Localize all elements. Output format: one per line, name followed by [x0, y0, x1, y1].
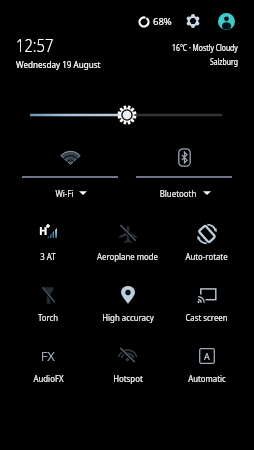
staticText: Bluetooth: [159, 187, 196, 199]
staticText: 3 AT: [40, 250, 56, 262]
staticText: FX: [41, 347, 55, 365]
staticText: AudioFX: [33, 372, 64, 384]
button[interactable]: Wi-Fi: [13, 145, 127, 199]
button[interactable]: A: [167, 340, 246, 401]
staticText: Wi-Fi: [55, 187, 74, 199]
staticText: Salzburg: [210, 55, 238, 67]
staticText: A: [204, 350, 210, 362]
button[interactable]: H: [8, 218, 88, 279]
button[interactable]: Aeroplane mode: [88, 218, 167, 279]
button[interactable]: Battery 68 percent: [138, 11, 172, 31]
button[interactable]: Settings: [182, 10, 204, 32]
button[interactable]: High accuracy: [88, 279, 167, 340]
staticText: Automatic: [188, 372, 226, 384]
button[interactable]: FX: [8, 340, 88, 401]
staticText: Auto-rotate: [185, 250, 228, 262]
button[interactable]: Cast screen: [167, 279, 246, 340]
button[interactable]: Auto-rotate: [167, 218, 246, 279]
button[interactable]: Brightness: [0, 100, 254, 130]
button[interactable]: User profile: [215, 10, 237, 32]
button[interactable]: Torch: [8, 279, 88, 340]
button[interactable]: Bluetooth: [127, 145, 241, 199]
staticText: High accuracy: [102, 311, 154, 323]
button[interactable]: Hotspot: [88, 340, 167, 401]
staticText: Torch: [38, 311, 58, 323]
staticText: H: [39, 223, 48, 237]
staticText: Aeroplane mode: [97, 250, 158, 262]
staticText: Wednesday 19 August: [16, 58, 101, 70]
staticText: 68%: [153, 15, 172, 28]
staticText: 16°C · Mostly Cloudy: [172, 41, 238, 53]
staticText: 12:57: [16, 33, 54, 58]
staticText: Hotspot: [113, 372, 143, 384]
staticText: Cast screen: [185, 311, 228, 323]
